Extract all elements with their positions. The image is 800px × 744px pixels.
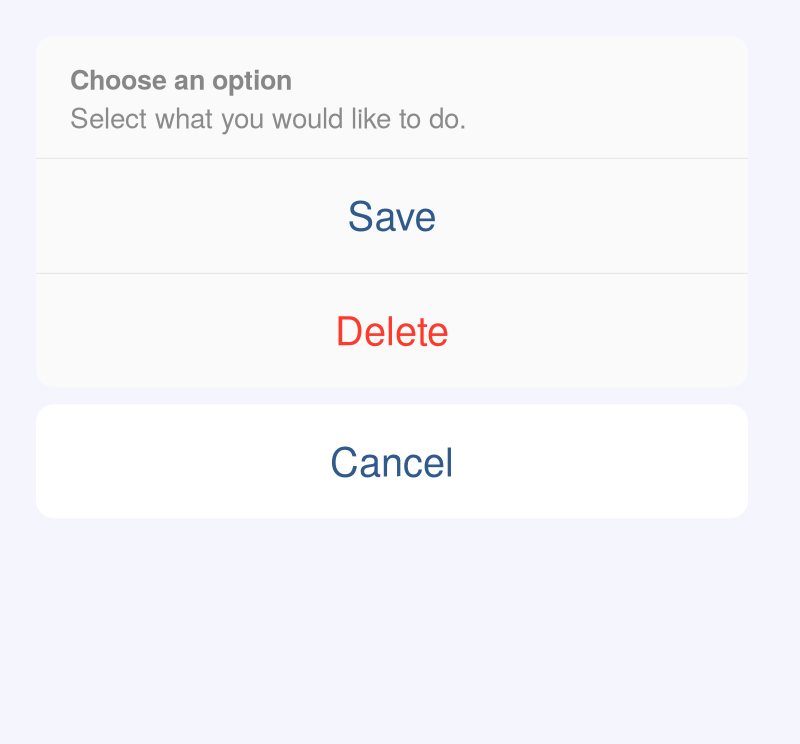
button[interactable]: Cancel	[36, 404, 748, 518]
staticText: Save	[347, 185, 436, 242]
button[interactable]: Delete	[36, 273, 748, 387]
staticText: Select what you would like to do.	[70, 96, 467, 136]
staticText: Choose an option	[70, 59, 292, 98]
staticText: Cancel	[330, 431, 454, 488]
staticText: Delete	[335, 300, 449, 356]
button[interactable]: Save	[36, 158, 748, 273]
